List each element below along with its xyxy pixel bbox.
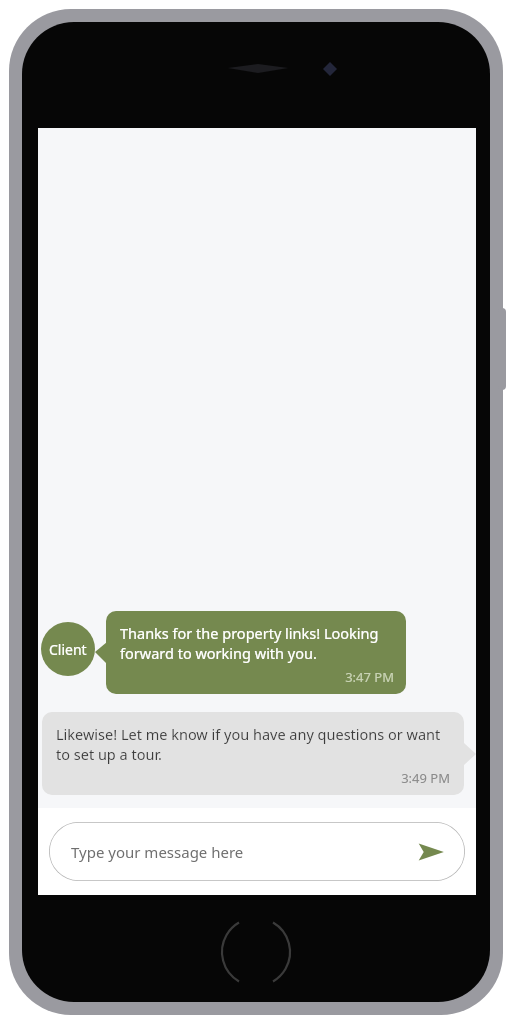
staticText: Client: [49, 640, 87, 659]
button[interactable]: Send: [413, 834, 449, 870]
button[interactable]: Client: [38, 611, 476, 694]
staticText: Likewise! Let me know if you have any qu…: [56, 724, 450, 765]
button[interactable]: Type your message here: [49, 822, 465, 881]
button[interactable]: Likewise! Let me know if you have any qu…: [38, 712, 476, 795]
staticText: 3:49 PM: [56, 769, 450, 787]
staticText: 3:47 PM: [120, 668, 394, 686]
staticText: Thanks for the property links! Looking f…: [120, 623, 394, 664]
staticText: Type your message here: [71, 842, 244, 862]
